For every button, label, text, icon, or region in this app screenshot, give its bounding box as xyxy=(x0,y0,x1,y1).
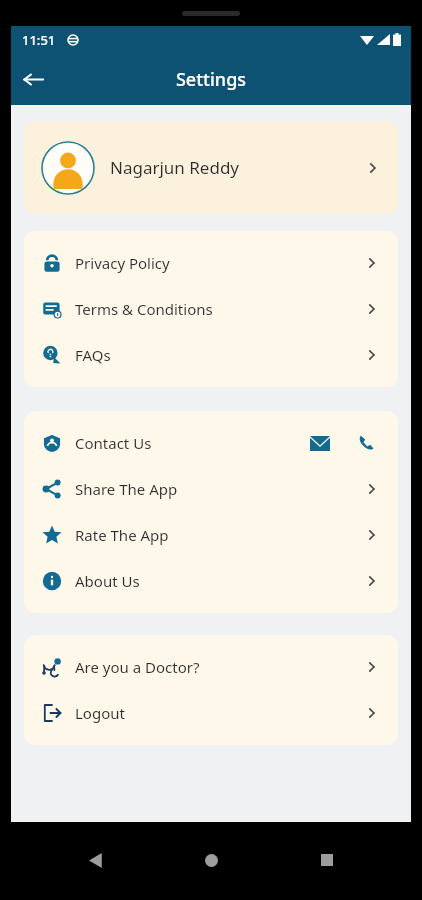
staticText: Rate The App xyxy=(75,525,169,545)
button[interactable]: Nagarjun Reddy xyxy=(24,121,398,214)
staticText: Privacy Policy xyxy=(75,253,170,273)
staticText: Nagarjun Reddy xyxy=(110,156,240,179)
staticText: About Us xyxy=(75,571,140,591)
button[interactable]: FAQs xyxy=(24,332,398,378)
button[interactable]: Terms & Conditions xyxy=(24,286,398,332)
staticText: Settings xyxy=(11,67,411,92)
button[interactable]: Back xyxy=(76,840,116,880)
button[interactable]: Rate The App xyxy=(24,512,398,558)
button[interactable]: Recent apps xyxy=(307,840,347,880)
button[interactable]: Share The App xyxy=(24,466,398,512)
staticText: Are you a Doctor? xyxy=(75,657,200,677)
button[interactable]: Home xyxy=(191,840,231,880)
button[interactable]: Privacy Policy xyxy=(24,240,398,286)
button[interactable]: About Us xyxy=(24,558,398,604)
button[interactable]: Call us xyxy=(350,426,384,460)
staticText: Logout xyxy=(75,703,125,723)
staticText: Contact Us xyxy=(75,433,152,453)
button[interactable]: Email us xyxy=(303,426,337,460)
staticText: FAQs xyxy=(75,345,111,365)
button[interactable]: Back xyxy=(11,57,55,101)
staticText: Share The App xyxy=(75,479,178,499)
button[interactable]: Are you a Doctor? xyxy=(24,644,398,690)
button[interactable]: Contact Us xyxy=(24,420,398,466)
staticText: Terms & Conditions xyxy=(75,299,213,319)
staticText: 11:51 xyxy=(22,31,56,49)
button[interactable]: Logout xyxy=(24,690,398,736)
